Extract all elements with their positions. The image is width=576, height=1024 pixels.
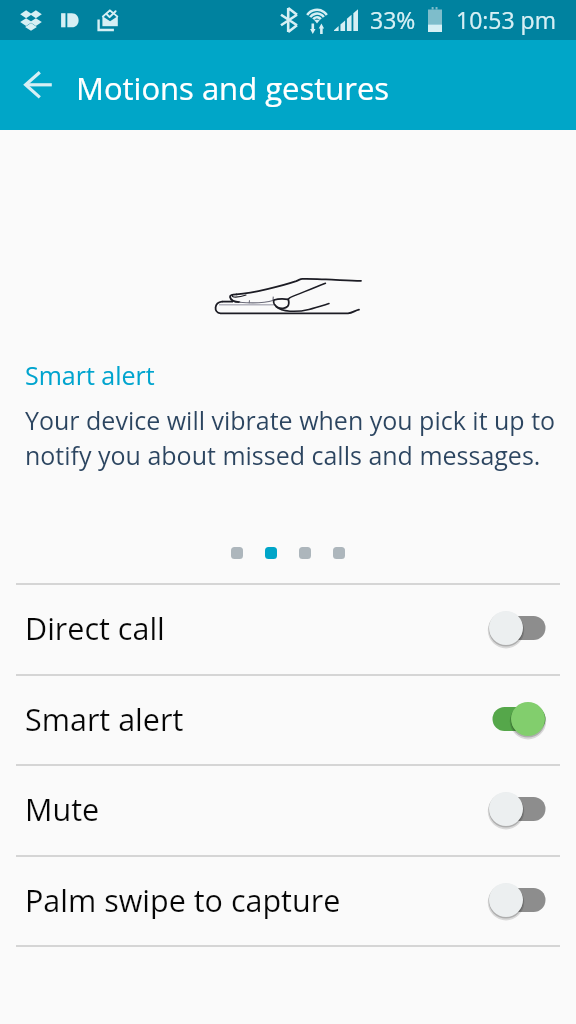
staticText: Smart alert (25, 358, 155, 392)
staticText: Smart alert (25, 698, 488, 740)
button[interactable]: Mute (0, 764, 576, 853)
button[interactable]: Page 2 (265, 547, 277, 559)
button[interactable]: Palm swipe to capture (0, 855, 576, 944)
button[interactable]: Page 1 (231, 547, 243, 559)
button[interactable]: Navigate up (10, 61, 58, 109)
staticText: Your device will vibrate when you pick i… (25, 403, 556, 473)
button[interactable]: Direct call (0, 583, 576, 672)
button[interactable]: Page 4 (333, 547, 345, 559)
button[interactable]: Smart alert (0, 674, 576, 763)
staticText: Motions and gestures (76, 67, 390, 109)
staticText: Direct call (25, 607, 488, 649)
staticText: Mute (25, 788, 488, 830)
staticText: Palm swipe to capture (25, 879, 488, 921)
staticText: 33% (370, 4, 416, 35)
staticText: 10:53 pm (456, 4, 556, 35)
button[interactable]: Page 3 (299, 547, 311, 559)
